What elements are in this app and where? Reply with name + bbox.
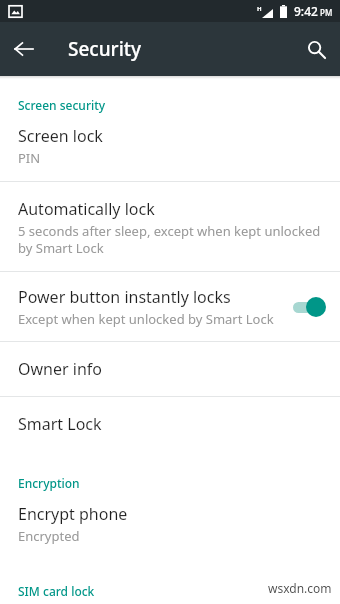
staticText: 9:42 xyxy=(294,3,318,19)
button[interactable]: Owner info xyxy=(0,342,340,396)
button[interactable]: Smart Lock xyxy=(0,397,340,451)
staticText: 5 seconds after sleep, except when kept … xyxy=(18,222,322,257)
staticText: Smart Lock xyxy=(18,413,102,435)
staticText: H xyxy=(257,5,262,13)
staticText: PM xyxy=(320,7,333,18)
staticText: Screen security xyxy=(18,97,106,113)
button[interactable]: Encrypt phone xyxy=(0,495,340,559)
staticText: wsxdn.com xyxy=(268,580,332,596)
staticText: Screen lock xyxy=(18,125,103,147)
staticText: Owner info xyxy=(18,358,102,380)
button[interactable]: Search xyxy=(292,25,340,73)
staticText: PIN xyxy=(18,149,41,167)
button[interactable]: Screen lock xyxy=(0,117,340,181)
staticText: Encryption xyxy=(18,475,80,491)
button[interactable]: Back xyxy=(0,25,48,73)
button[interactable]: Automatically lock xyxy=(0,182,340,271)
staticText: Encrypted xyxy=(18,527,80,545)
staticText: Encrypt phone xyxy=(18,503,128,525)
staticText: SIM card lock xyxy=(18,583,95,599)
staticText: Security xyxy=(68,36,142,62)
button[interactable]: Power button instantly locks xyxy=(0,272,340,341)
staticText: Automatically lock xyxy=(18,198,155,220)
staticText: Except when kept unlocked by Smart Lock xyxy=(18,310,274,328)
staticText: Power button instantly locks xyxy=(18,286,231,308)
